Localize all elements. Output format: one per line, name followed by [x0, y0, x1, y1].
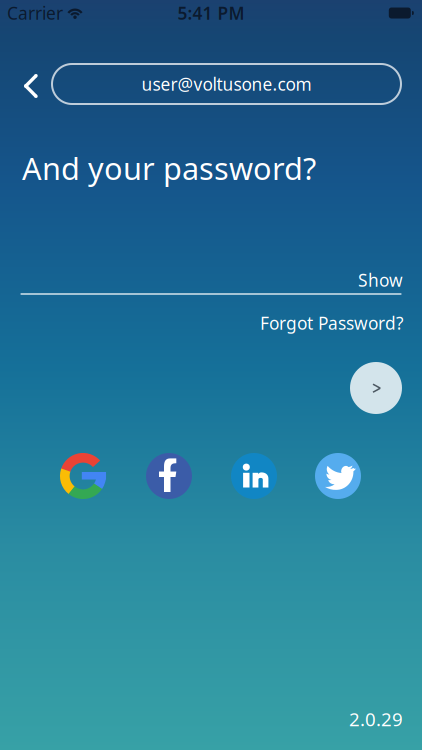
- button[interactable]: user@voltusone.com: [52, 64, 401, 104]
- button[interactable]: Forgot Password?: [184, 310, 404, 336]
- staticText: 5:41 PM: [177, 1, 244, 24]
- button[interactable]: Sign in with Facebook: [144, 451, 194, 501]
- button[interactable]: Sign in with LinkedIn: [229, 451, 279, 501]
- button[interactable]: Password: [20, 261, 310, 295]
- staticText: And your password?: [22, 148, 316, 188]
- staticText: user@voltusone.com: [141, 72, 311, 95]
- staticText: Show: [358, 268, 403, 291]
- button[interactable]: Continue: [350, 362, 402, 414]
- staticText: Carrier: [7, 1, 63, 24]
- button[interactable]: Sign in with Twitter: [313, 451, 363, 501]
- button[interactable]: Back: [11, 64, 51, 108]
- staticText: Forgot Password?: [260, 311, 404, 334]
- button[interactable]: Show: [313, 267, 403, 293]
- button[interactable]: Sign in with Google: [58, 451, 108, 501]
- staticText: 2.0.29: [349, 707, 403, 731]
